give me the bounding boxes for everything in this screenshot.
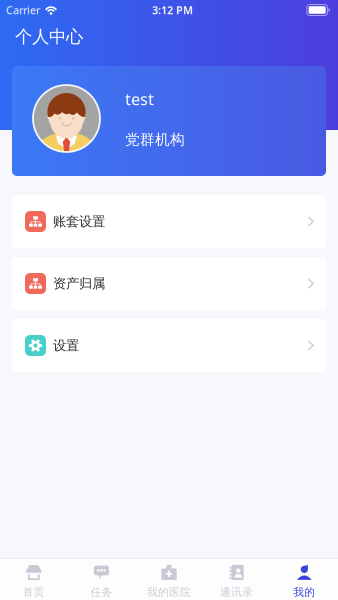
button[interactable]: 我的 [270,558,338,600]
staticText: test [125,88,154,110]
button[interactable]: 设置 [12,319,326,372]
staticText: 设置 [53,337,79,354]
staticText: 党群机构 [125,131,185,149]
staticText: 任务 [90,586,112,599]
staticText: 3:12 PM [152,3,193,17]
staticText: 个人中心 [15,26,83,47]
button[interactable]: 首页 [0,558,68,600]
staticText: 账套设置 [53,213,105,230]
button[interactable]: 资产归属 [12,257,326,310]
staticText: 通讯录 [220,586,253,599]
staticText: Carrier [6,3,40,17]
staticText: 首页 [23,586,45,599]
button[interactable]: 通讯录 [203,558,270,600]
staticText: 我的医院 [147,586,191,599]
button[interactable]: 任务 [68,558,135,600]
button[interactable]: 我的医院 [135,558,203,600]
staticText: 资产归属 [53,275,105,292]
staticText: 我的 [293,586,315,599]
button[interactable]: 账套设置 [12,195,326,248]
